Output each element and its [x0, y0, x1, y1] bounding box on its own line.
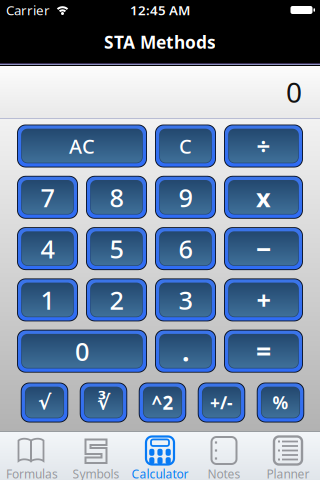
staticText: STA Methods [104, 30, 216, 53]
staticText: 1 [40, 283, 54, 317]
staticText: ^2 [151, 390, 173, 415]
button[interactable]: √ [21, 382, 68, 422]
staticText: Carrier [6, 1, 50, 19]
staticText: − [256, 231, 271, 266]
staticText: 6 [178, 232, 192, 265]
staticText: 0 [75, 334, 89, 368]
button[interactable]: % [257, 382, 304, 422]
button[interactable]: ÷ [224, 124, 303, 167]
button[interactable]: 8 [86, 176, 147, 219]
staticText: AC [69, 133, 95, 159]
staticText: Formulas [6, 466, 58, 480]
button[interactable]: . [155, 330, 216, 373]
button[interactable]: ∛ [80, 382, 127, 422]
button[interactable]: Symbols [64, 432, 128, 480]
staticText: + [256, 283, 270, 317]
button[interactable]: − [224, 227, 303, 270]
staticText: 0 [286, 73, 302, 111]
button[interactable]: Calculator [128, 432, 192, 480]
staticText: +/- [210, 391, 233, 414]
staticText: 2 [109, 283, 123, 317]
staticText: 8 [109, 180, 123, 214]
button[interactable]: 3 [155, 278, 216, 321]
button[interactable]: 9 [155, 176, 216, 219]
button[interactable]: + [224, 278, 303, 321]
button[interactable]: 0 [17, 330, 147, 373]
staticText: % [272, 391, 288, 414]
staticText: ÷ [256, 130, 270, 162]
staticText: = [256, 333, 271, 369]
staticText: 5 [109, 232, 123, 265]
button[interactable]: 1 [17, 278, 78, 321]
button[interactable]: 6 [155, 227, 216, 270]
staticText: 9 [178, 180, 192, 214]
staticText: . [182, 333, 189, 369]
staticText: √ [38, 391, 51, 414]
button[interactable]: = [224, 330, 303, 373]
button[interactable]: x [224, 176, 303, 219]
button[interactable]: 4 [17, 227, 78, 270]
button[interactable]: 7 [17, 176, 78, 219]
staticText: ∛ [97, 391, 110, 414]
button[interactable]: C [155, 124, 216, 167]
staticText: Calculator [131, 466, 188, 480]
button[interactable]: 5 [86, 227, 147, 270]
button[interactable]: +/- [198, 382, 245, 422]
button[interactable]: Notes [192, 432, 256, 480]
staticText: 3 [178, 283, 192, 317]
staticText: Symbols [72, 466, 119, 480]
button[interactable]: AC [17, 124, 147, 167]
staticText: x [256, 180, 271, 214]
staticText: Planner [266, 466, 309, 480]
staticText: C [179, 133, 192, 159]
button[interactable]: ^2 [139, 382, 186, 422]
staticText: 12:45 AM [130, 1, 190, 19]
staticText: 7 [40, 180, 54, 214]
staticText: Notes [207, 466, 240, 480]
button[interactable]: Formulas [0, 432, 64, 480]
button[interactable]: 2 [86, 278, 147, 321]
button[interactable]: Planner [256, 432, 320, 480]
staticText: 4 [40, 232, 54, 265]
